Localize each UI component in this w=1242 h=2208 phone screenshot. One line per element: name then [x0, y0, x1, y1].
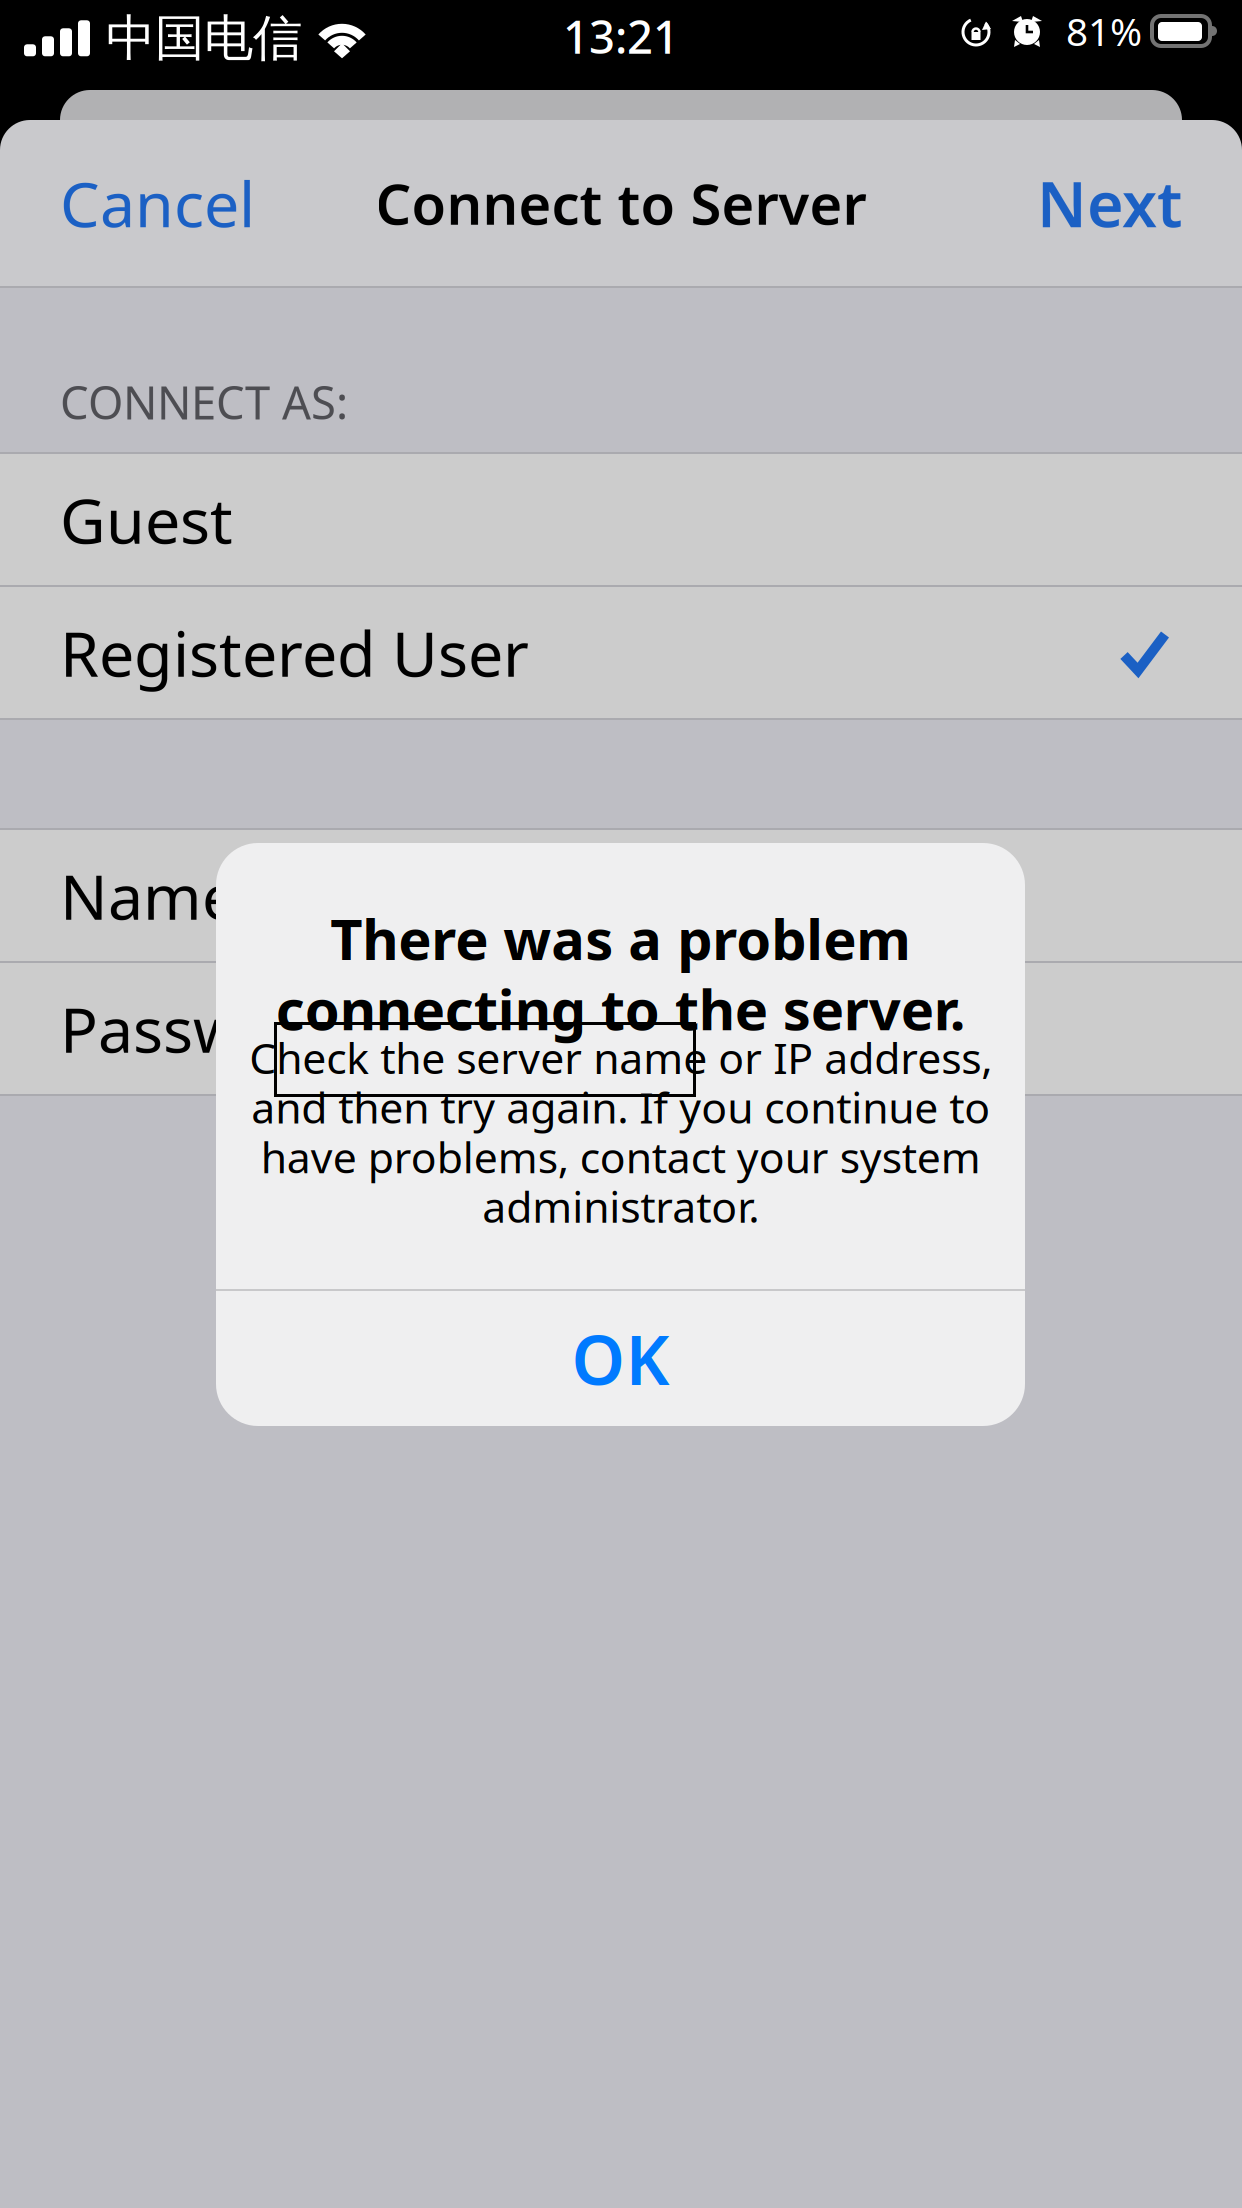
staticText: 中国电信: [106, 8, 302, 69]
button[interactable]: Guest: [0, 454, 1242, 585]
staticText: Cancel: [60, 161, 255, 245]
staticText: 13:21: [563, 6, 679, 66]
staticText: Next: [1037, 161, 1182, 245]
button[interactable]: Registered User: [0, 587, 1242, 718]
staticText: CONNECT AS:: [60, 372, 348, 432]
staticText: 81%: [1066, 5, 1142, 57]
staticText: Check the server name or IP address, and…: [249, 1029, 992, 1235]
staticText: Password: [60, 987, 344, 1070]
staticText: There was a problem connecting to the se…: [275, 901, 965, 1046]
button[interactable]: Next: [982, 120, 1182, 286]
button[interactable]: Cancel: [60, 120, 310, 286]
staticText: OK: [571, 1313, 669, 1404]
staticText: Guest: [60, 478, 233, 561]
button[interactable]: Name: [0, 830, 1242, 961]
staticText: Registered User: [60, 611, 529, 694]
staticText: Connect to Server: [375, 166, 866, 240]
button[interactable]: Password: [0, 963, 1242, 1094]
button[interactable]: OK: [216, 1291, 1025, 1426]
staticText: Name: [60, 854, 237, 937]
